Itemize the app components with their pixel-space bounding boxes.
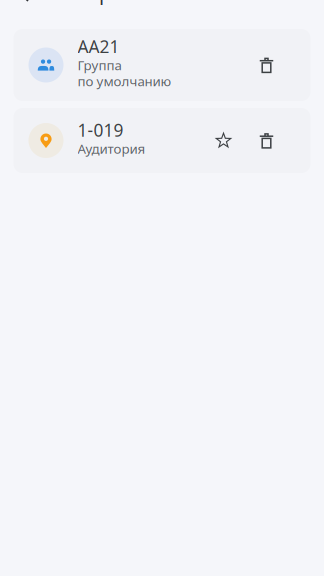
- staticText: AA21: [77, 35, 119, 58]
- button[interactable]: Delete: [247, 45, 285, 85]
- staticText: Группа: [77, 56, 121, 74]
- staticText: Избранное: [62, 0, 169, 6]
- staticText: по умолчанию: [77, 72, 171, 90]
- staticText: 1-019: [77, 118, 123, 141]
- button[interactable]: AA21: [0, 29, 324, 101]
- button[interactable]: Back: [8, 0, 48, 15]
- button[interactable]: 1-019: [0, 108, 324, 173]
- staticText: Аудитория: [77, 140, 145, 157]
- button[interactable]: Favourite: [199, 120, 247, 160]
- button[interactable]: Delete: [247, 120, 285, 160]
